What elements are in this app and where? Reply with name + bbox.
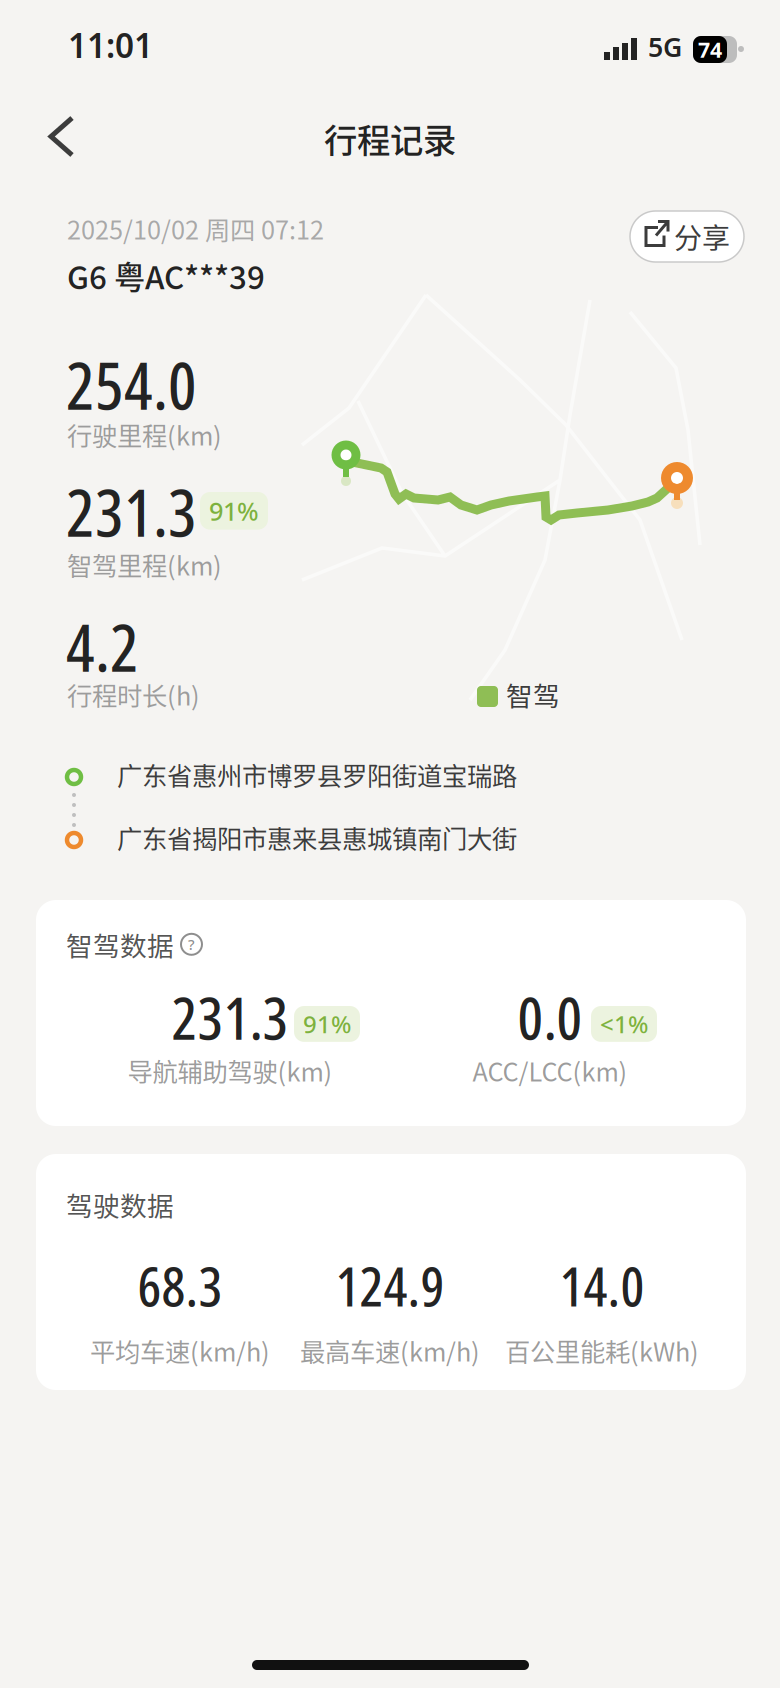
- staticText: 0.0: [517, 977, 582, 1057]
- staticText: ACC/LCC(km): [472, 1052, 627, 1089]
- staticText: 91%: [209, 494, 259, 528]
- staticText: ?: [188, 935, 195, 954]
- staticText: 行驶里程(km): [67, 416, 222, 453]
- staticText: 最高车速(km/h): [300, 1332, 480, 1369]
- staticText: 智驾数据: [66, 925, 174, 964]
- staticText: 231.3: [66, 467, 197, 556]
- staticText: 254.0: [66, 340, 197, 429]
- staticText: 11:01: [68, 23, 153, 67]
- staticText: G6 粤AC***39: [67, 253, 265, 298]
- staticText: 14.0: [559, 1248, 644, 1322]
- staticText: 231.3: [171, 977, 288, 1057]
- staticText: 智驾: [506, 675, 560, 714]
- staticText: 91%: [303, 1008, 351, 1040]
- staticText: 5G: [648, 29, 682, 64]
- staticText: 广东省揭阳市惠来县惠城镇南门大街: [117, 819, 517, 856]
- staticText: 68.3: [137, 1248, 222, 1322]
- staticText: 百公里能耗(kWh): [505, 1332, 699, 1369]
- staticText: <1%: [600, 1008, 648, 1040]
- staticText: 124.9: [335, 1248, 444, 1322]
- button[interactable]: Back: [37, 108, 86, 165]
- staticText: 导航辅助驾驶(km): [127, 1052, 332, 1089]
- staticText: 2025/10/02 周四 07:12: [67, 210, 324, 247]
- staticText: 智驾里程(km): [67, 546, 222, 583]
- button[interactable]: Help: [181, 934, 202, 955]
- staticText: 行程时长(h): [67, 676, 200, 713]
- staticText: 4.2: [66, 602, 139, 691]
- staticText: 平均车速(km/h): [90, 1332, 270, 1369]
- button[interactable]: 分享: [630, 211, 744, 262]
- staticText: 行程记录: [324, 114, 456, 162]
- staticText: 广东省惠州市博罗县罗阳街道宝瑞路: [117, 756, 517, 793]
- staticText: 74: [698, 35, 722, 64]
- staticText: 驾驶数据: [66, 1185, 174, 1224]
- staticText: 分享: [674, 216, 730, 257]
